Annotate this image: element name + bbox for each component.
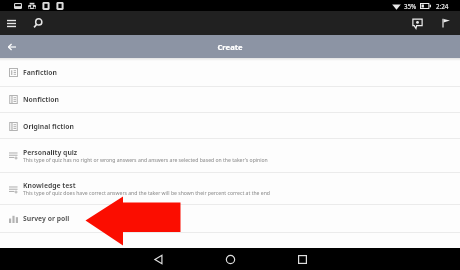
staticText: Nonfiction [23, 95, 60, 104]
staticText: This type of quiz does have correct answ… [23, 190, 270, 197]
staticText: 2:24 [436, 2, 449, 10]
staticText: Survey or poll [23, 214, 70, 223]
staticText: Personality quiz [23, 148, 78, 157]
button[interactable]: Back [2, 37, 22, 57]
button[interactable]: Knowledge test [0, 173, 460, 205]
button[interactable]: Survey or poll [0, 205, 460, 232]
staticText: 35% [404, 2, 417, 10]
button[interactable]: Nonfiction [0, 87, 460, 112]
staticText: Original fiction [23, 122, 74, 131]
staticText: Knowledge test [23, 181, 76, 190]
button[interactable]: Personality quiz [0, 139, 460, 172]
button[interactable]: Messages [407, 13, 427, 33]
button[interactable]: Flag [436, 13, 456, 33]
button[interactable]: Menu [1, 13, 21, 33]
button[interactable]: Fanfiction [0, 58, 460, 86]
button[interactable]: Recents [292, 249, 312, 269]
button[interactable]: Home [220, 249, 240, 269]
button[interactable]: Original fiction [0, 113, 460, 139]
button[interactable]: Back [148, 249, 168, 269]
button[interactable]: Search [27, 13, 47, 33]
staticText: Fanfiction [23, 68, 58, 77]
staticText: Create [217, 42, 243, 52]
staticText: This type of quiz has no right or wrong … [23, 157, 268, 164]
